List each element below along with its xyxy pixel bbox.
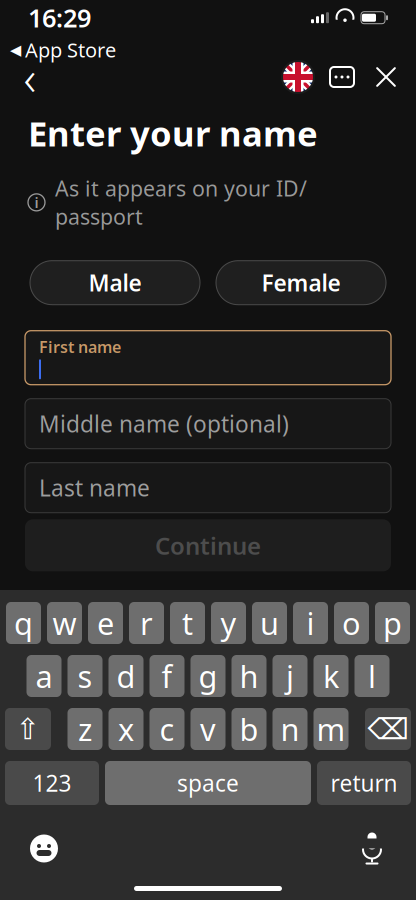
button[interactable]: Close [364, 55, 408, 99]
button[interactable]: g [190, 655, 225, 697]
staticText: t [182, 603, 193, 643]
button[interactable]: Support chat [320, 55, 364, 99]
button[interactable]: f [149, 655, 184, 697]
button[interactable]: p [375, 602, 410, 644]
button[interactable]: First name [25, 331, 391, 385]
button[interactable]: b [231, 708, 266, 750]
staticText: a [35, 656, 52, 696]
staticText: ⇧ [15, 712, 40, 746]
button[interactable]: return [317, 761, 411, 805]
staticText: o [342, 603, 361, 643]
button[interactable]: a [26, 655, 61, 697]
staticText: e [97, 603, 114, 643]
button[interactable]: Delete [365, 708, 411, 750]
staticText: w [52, 603, 76, 643]
staticText: 16:29 [28, 1, 91, 34]
staticText: 123 [32, 768, 71, 798]
button[interactable]: h [231, 655, 266, 697]
button[interactable]: w [47, 602, 82, 644]
staticText: y [220, 603, 236, 643]
staticText: k [323, 656, 339, 696]
staticText: i [306, 603, 314, 643]
staticText: Middle name (optional) [39, 409, 289, 439]
button[interactable]: x [108, 708, 143, 750]
staticText: First name [39, 336, 121, 357]
staticText: Enter your name [28, 110, 318, 156]
button[interactable]: z [67, 708, 102, 750]
button[interactable]: 123 [5, 761, 99, 805]
staticText: ⌫ [367, 712, 408, 746]
button[interactable]: Dictation [350, 826, 394, 870]
button[interactable]: s [67, 655, 102, 697]
button[interactable]: n [272, 708, 307, 750]
staticText: g [198, 656, 217, 696]
staticText: Male [88, 268, 141, 298]
staticText: d [116, 656, 135, 696]
staticText: i [34, 193, 38, 212]
staticText: u [260, 603, 279, 643]
button[interactable]: j [272, 655, 307, 697]
button[interactable]: Female [216, 261, 386, 305]
staticText: n [280, 709, 299, 749]
button[interactable]: Emoji [22, 826, 66, 870]
button[interactable]: l [354, 655, 389, 697]
staticText: h [239, 656, 258, 696]
staticText: ‹ [23, 45, 36, 109]
button[interactable]: u [252, 602, 287, 644]
button[interactable]: Continue [25, 519, 391, 571]
staticText: f [161, 656, 172, 696]
staticText: ◀ [10, 41, 21, 58]
staticText: m [316, 709, 345, 749]
staticText: Last name [39, 473, 150, 503]
button[interactable]: k [313, 655, 348, 697]
staticText: Continue [155, 529, 261, 561]
staticText: As it appears on your ID/passport [55, 174, 307, 231]
button[interactable]: v [190, 708, 225, 750]
button[interactable]: e [88, 602, 123, 644]
button[interactable]: i [293, 602, 328, 644]
button[interactable]: Middle name (optional) [25, 399, 391, 449]
staticText: x [118, 709, 134, 749]
staticText: q [14, 603, 33, 643]
button[interactable]: m [313, 708, 348, 750]
staticText: l [368, 656, 376, 696]
button[interactable]: r [129, 602, 164, 644]
button[interactable]: Back [8, 55, 52, 99]
staticText: z [78, 709, 92, 749]
button[interactable]: Language [276, 55, 320, 99]
button[interactable]: Shift [5, 708, 51, 750]
button[interactable]: q [6, 602, 41, 644]
staticText: return [330, 768, 397, 798]
staticText: Female [261, 268, 340, 298]
staticText: j [286, 656, 294, 696]
staticText: space [177, 768, 239, 798]
staticText: c [159, 709, 174, 749]
staticText: p [383, 603, 402, 643]
staticText: b [239, 709, 258, 749]
staticText: s [77, 656, 92, 696]
button[interactable]: o [334, 602, 369, 644]
staticText: r [140, 603, 153, 643]
button[interactable]: t [170, 602, 205, 644]
staticText: v [200, 709, 216, 749]
staticText: App Store [25, 36, 116, 63]
button[interactable]: y [211, 602, 246, 644]
button[interactable]: c [149, 708, 184, 750]
button[interactable]: Male [30, 261, 200, 305]
button[interactable]: Last name [25, 463, 391, 513]
button[interactable]: space [105, 761, 311, 805]
button[interactable]: d [108, 655, 143, 697]
